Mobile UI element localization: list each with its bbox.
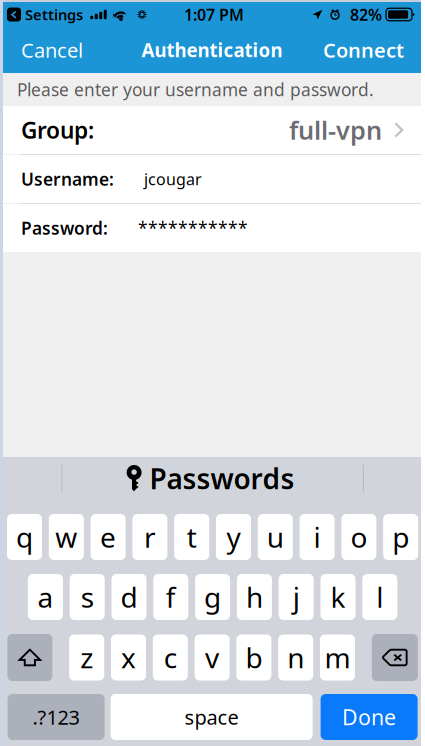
button[interactable]: z [69, 634, 104, 680]
button[interactable]: Cancel [3, 27, 97, 73]
button[interactable]: r [132, 514, 167, 560]
button[interactable]: e [91, 514, 126, 560]
staticText: n [287, 639, 304, 676]
staticText: f [166, 578, 176, 616]
button[interactable]: .?123 [8, 694, 105, 740]
button[interactable]: u [258, 514, 293, 560]
staticText: q [16, 518, 33, 556]
staticText: g [204, 578, 221, 616]
button[interactable]: Done [321, 694, 418, 740]
staticText: d [120, 578, 137, 616]
staticText: u [267, 518, 284, 556]
staticText: space [185, 704, 239, 730]
button[interactable]: t [174, 514, 209, 560]
staticText: Connect [323, 37, 404, 63]
button[interactable]: Shift [7, 634, 52, 681]
button[interactable]: q [7, 514, 42, 560]
button[interactable]: y [216, 514, 251, 560]
button[interactable]: Username: [3, 155, 421, 203]
staticText: h [246, 578, 263, 616]
staticText: .?123 [33, 704, 80, 730]
button[interactable]: v [195, 634, 230, 680]
staticText: Done [342, 703, 396, 731]
staticText: Cancel [21, 37, 83, 63]
staticText: a [37, 578, 53, 616]
button[interactable]: o [341, 514, 376, 560]
button[interactable]: j [279, 574, 314, 620]
staticText: j [293, 578, 300, 616]
button[interactable]: Password: [3, 204, 421, 252]
staticText: s [81, 578, 94, 616]
staticText: b [245, 639, 262, 676]
staticText: Password: [21, 216, 108, 239]
button[interactable]: l [362, 574, 397, 620]
staticText: 82% [350, 4, 382, 25]
staticText: w [55, 518, 77, 556]
staticText: jcougar [144, 168, 202, 190]
button[interactable]: Connect [309, 27, 421, 73]
staticText: Username: [21, 167, 114, 190]
staticText: Passwords [150, 460, 295, 497]
button[interactable]: x [111, 634, 146, 680]
staticText: o [350, 518, 367, 556]
staticText: m [324, 639, 350, 676]
staticText: Group: [21, 115, 94, 145]
staticText: *********** [138, 216, 248, 239]
staticText: i [314, 518, 321, 556]
staticText: l [376, 578, 383, 616]
button[interactable]: g [195, 574, 230, 620]
staticText: Settings [25, 5, 83, 24]
staticText: x [121, 639, 136, 676]
button[interactable]: m [320, 634, 355, 680]
staticText: e [100, 518, 116, 556]
staticText: v [205, 639, 219, 676]
button[interactable]: a [28, 574, 63, 620]
button[interactable]: Delete [372, 634, 418, 681]
button[interactable]: c [153, 634, 188, 680]
button[interactable]: h [237, 574, 272, 620]
staticText: Please enter your username and password. [17, 78, 374, 101]
staticText: full-vpn [289, 113, 382, 147]
button[interactable]: Group: [3, 106, 421, 154]
button[interactable]: p [383, 514, 418, 560]
staticText: c [164, 639, 177, 676]
button[interactable]: space [111, 694, 313, 740]
button[interactable]: f [153, 574, 188, 620]
staticText: p [392, 518, 409, 556]
button[interactable]: w [49, 514, 84, 560]
button[interactable]: b [236, 634, 271, 680]
button[interactable]: Passwords [127, 460, 299, 497]
staticText: z [80, 639, 93, 676]
button[interactable]: Back to Settings [7, 5, 83, 24]
button[interactable]: s [70, 574, 105, 620]
staticText: Authentication [141, 38, 282, 62]
button[interactable]: i [300, 514, 335, 560]
staticText: 1:07 PM [184, 4, 244, 25]
staticText: r [144, 518, 156, 556]
button[interactable]: d [111, 574, 146, 620]
staticText: y [226, 518, 240, 556]
staticText: t [187, 518, 197, 556]
staticText: k [330, 578, 345, 616]
button[interactable]: n [278, 634, 313, 680]
button[interactable]: k [320, 574, 355, 620]
